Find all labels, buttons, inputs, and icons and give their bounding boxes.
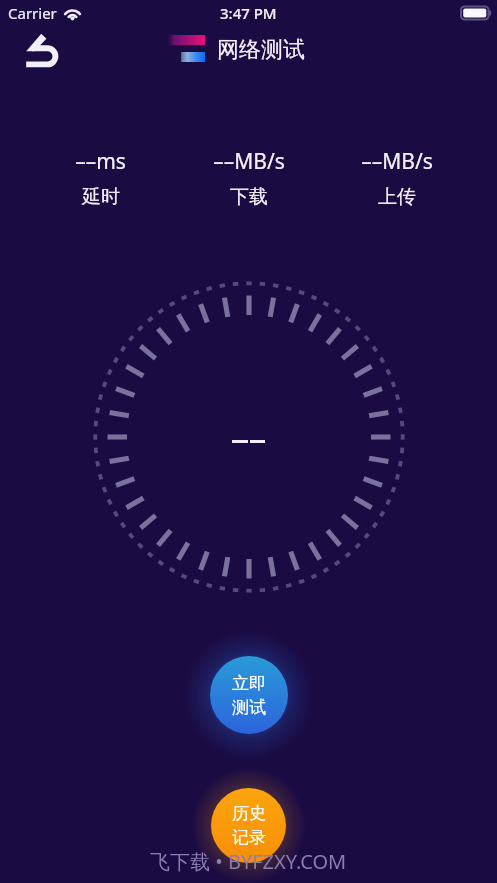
button[interactable]: Back	[18, 26, 66, 74]
staticText: 上传	[378, 185, 416, 209]
staticText: ––MB/s	[213, 147, 285, 176]
staticText: 3:47 PM	[220, 3, 277, 23]
button[interactable]: ––ms	[26, 147, 175, 209]
button[interactable]: 立即	[210, 656, 288, 734]
staticText: 立即	[232, 673, 266, 694]
staticText: ––MB/s	[361, 147, 433, 176]
staticText: 延时	[82, 185, 120, 209]
staticText: Carrier	[8, 3, 57, 23]
staticText: 下载	[230, 185, 268, 209]
staticText: 记录	[232, 827, 266, 848]
button[interactable]: 历史	[211, 788, 286, 863]
button[interactable]: ––MB/s	[175, 147, 323, 209]
staticText: 测试	[232, 697, 266, 718]
button[interactable]: ––MB/s	[323, 147, 471, 209]
staticText: 飞下载 • BYFZXY.COM	[150, 848, 347, 875]
staticText: ––ms	[75, 147, 126, 176]
staticText: 历史	[232, 803, 266, 824]
staticText: 网络测试	[217, 36, 305, 64]
